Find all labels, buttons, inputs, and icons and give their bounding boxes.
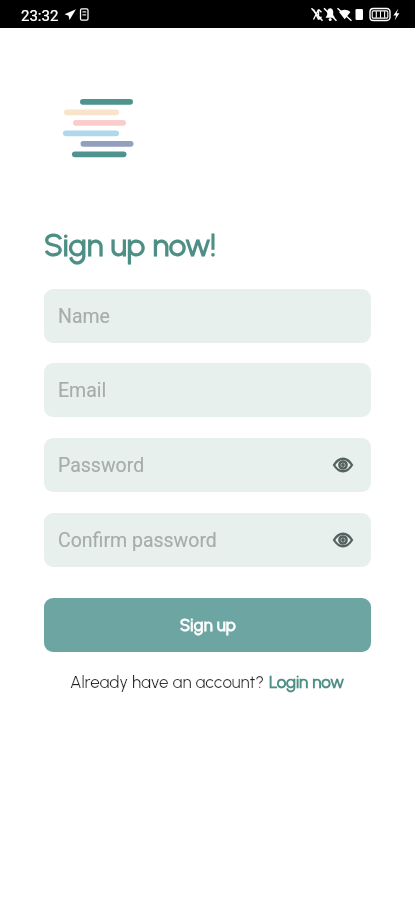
button[interactable]: Show password xyxy=(331,453,355,477)
staticText: Email xyxy=(58,379,107,402)
staticText: Confirm password xyxy=(58,529,217,552)
staticText: Already have an account? xyxy=(70,672,269,692)
staticText: Login now xyxy=(269,672,345,692)
button[interactable]: Show password xyxy=(331,528,355,552)
staticText: Password xyxy=(58,454,145,477)
button[interactable]: Sign up xyxy=(44,598,371,652)
button[interactable]: Password xyxy=(44,438,371,492)
button[interactable]: Name xyxy=(44,289,371,343)
button[interactable]: Login now xyxy=(269,672,345,692)
staticText: Name xyxy=(58,305,110,328)
button[interactable]: Email xyxy=(44,363,371,417)
staticText: 23:32 xyxy=(21,7,59,25)
staticText: Sign up now! xyxy=(44,227,217,264)
staticText: Sign up xyxy=(180,615,236,635)
button[interactable]: Confirm password xyxy=(44,513,371,567)
